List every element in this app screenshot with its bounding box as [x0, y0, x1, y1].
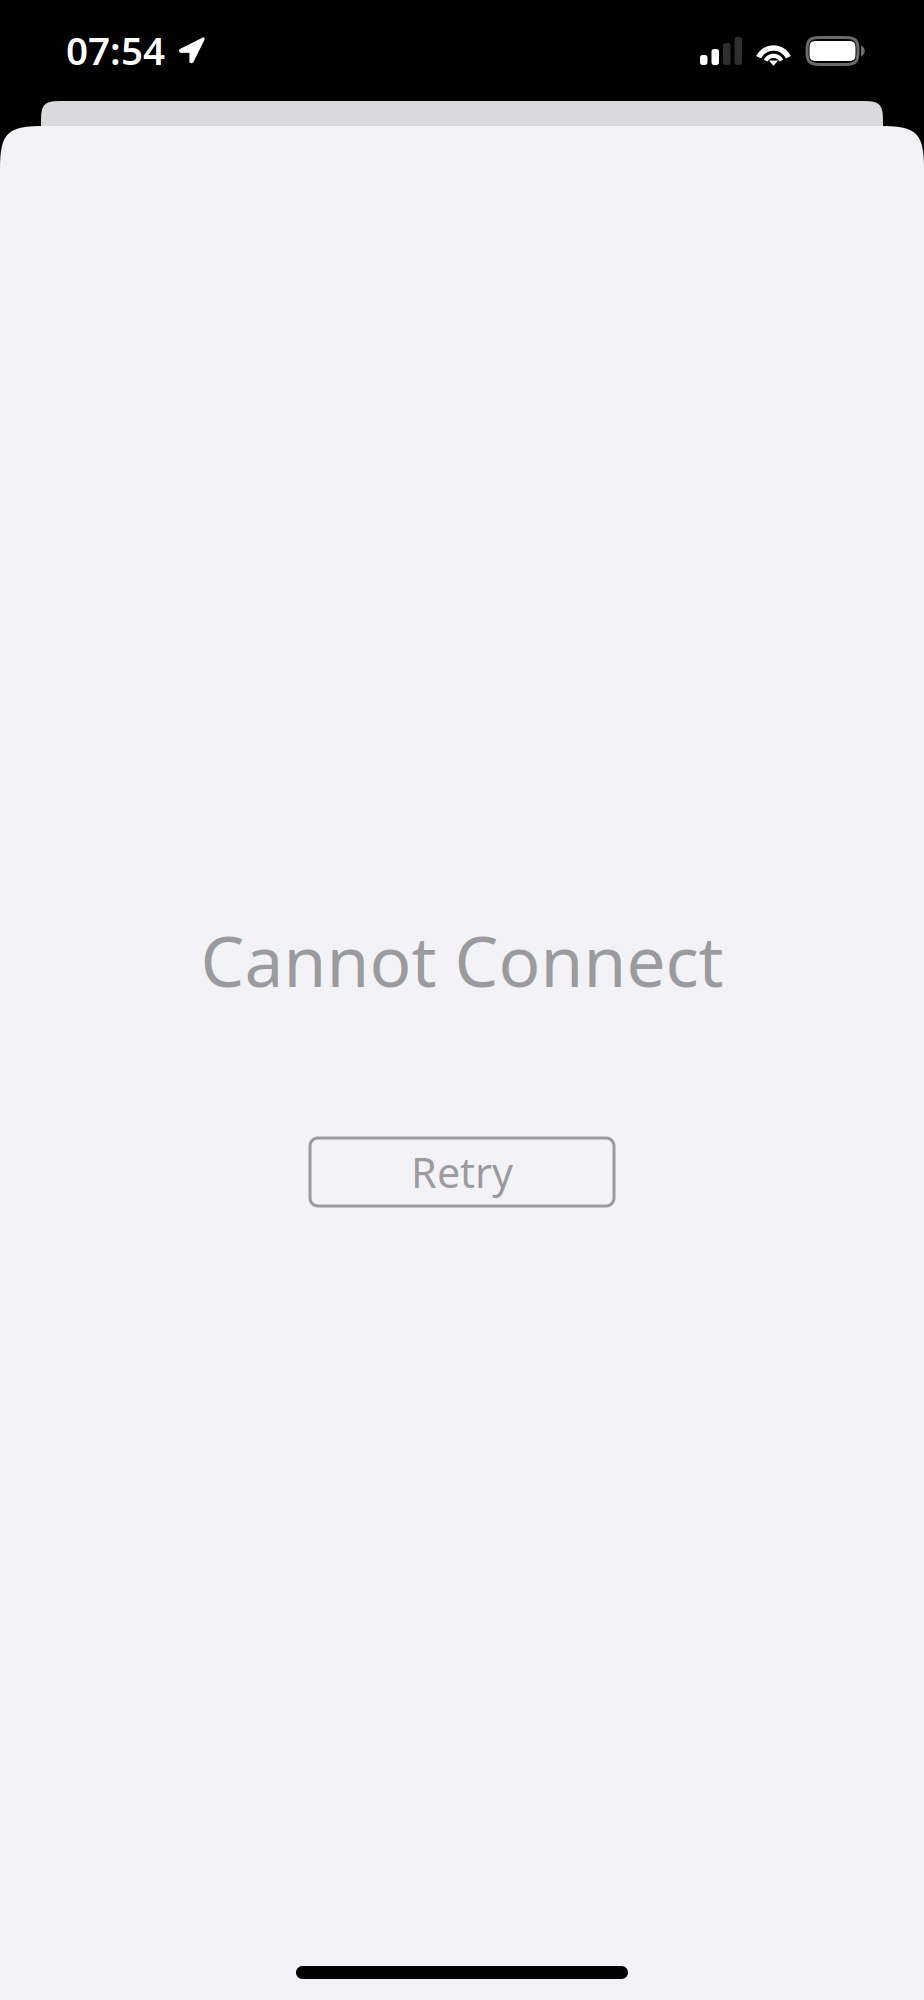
button[interactable]: Retry: [310, 1138, 614, 1206]
staticText: 07:54: [66, 24, 165, 76]
staticText: Retry: [411, 1145, 513, 1199]
staticText: Cannot Connect: [200, 914, 723, 1006]
